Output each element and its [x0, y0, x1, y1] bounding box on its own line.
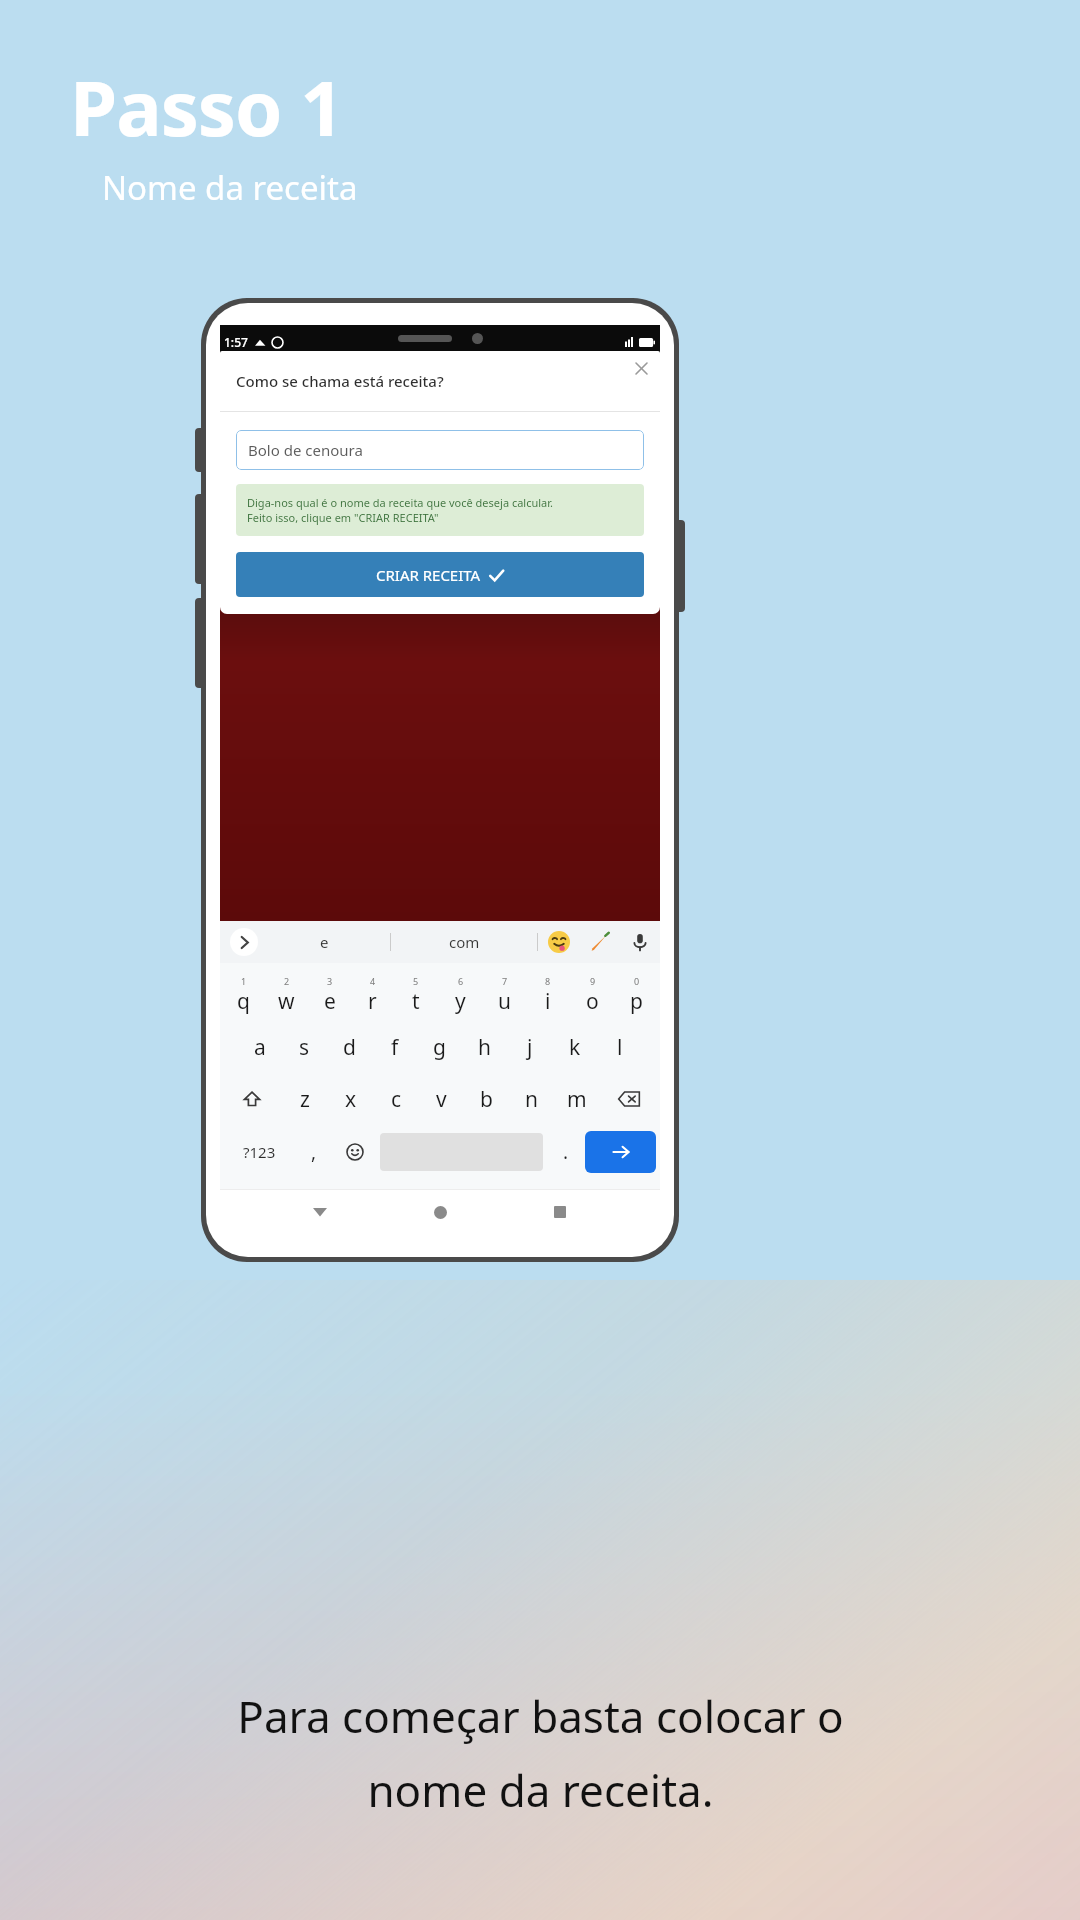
staticText: ,: [311, 1139, 317, 1165]
staticText: 0: [634, 975, 640, 987]
staticText: u: [498, 987, 511, 1016]
staticText: Bolo de cenoura: [248, 440, 363, 460]
staticText: t: [412, 987, 420, 1016]
button[interactable]: j: [507, 1021, 552, 1073]
button[interactable]: Apagar: [599, 1073, 658, 1125]
staticText: Feito isso, clique em "CRIAR RECEITA": [247, 510, 439, 525]
staticText: 1: [241, 975, 247, 987]
staticText: y: [455, 987, 466, 1016]
staticText: Diga-nos qual é o nome da receita que vo…: [247, 495, 554, 510]
button[interactable]: 8: [526, 969, 570, 1021]
staticText: l: [617, 1033, 623, 1062]
button[interactable]: f: [372, 1021, 417, 1073]
staticText: 2: [284, 975, 290, 987]
staticText: p: [630, 987, 643, 1016]
staticText: 1:57: [224, 334, 248, 350]
button[interactable]: 4: [351, 969, 394, 1021]
staticText: com: [449, 932, 480, 952]
button[interactable]: m: [554, 1073, 599, 1125]
staticText: f: [391, 1033, 399, 1062]
staticText: q: [237, 987, 250, 1016]
button[interactable]: Voz: [620, 921, 660, 963]
button[interactable]: c: [374, 1073, 419, 1125]
staticText: 3: [327, 975, 333, 987]
staticText: 7: [502, 975, 508, 987]
button[interactable]: Enter: [585, 1131, 656, 1173]
button[interactable]: x: [328, 1073, 374, 1125]
button[interactable]: z: [282, 1073, 328, 1125]
staticText: Nome da receita: [102, 165, 358, 210]
staticText: w: [278, 987, 295, 1016]
staticText: k: [569, 1033, 581, 1062]
staticText: ?123: [243, 1142, 276, 1162]
staticText: CRIAR RECEITA: [376, 565, 481, 585]
staticText: Para começar basta colocar o: [237, 1686, 844, 1746]
staticText: z: [300, 1085, 310, 1114]
button[interactable]: .: [547, 1125, 585, 1179]
button[interactable]: Início: [420, 1192, 460, 1232]
staticText: Como se chama está receita?: [236, 371, 444, 391]
staticText: r: [368, 987, 377, 1016]
staticText: 9: [590, 975, 596, 987]
staticText: n: [525, 1085, 538, 1114]
button[interactable]: s: [282, 1021, 327, 1073]
staticText: i: [545, 987, 551, 1016]
staticText: a: [254, 1033, 266, 1062]
staticText: 4: [370, 975, 376, 987]
button[interactable]: k: [552, 1021, 597, 1073]
staticText: x: [345, 1085, 357, 1114]
staticText: .: [563, 1139, 569, 1165]
button[interactable]: d: [327, 1021, 372, 1073]
button[interactable]: g: [417, 1021, 462, 1073]
button[interactable]: ,: [295, 1125, 333, 1179]
button[interactable]: 9: [570, 969, 614, 1021]
button[interactable]: Shift: [222, 1073, 282, 1125]
button[interactable]: CRIAR RECEITA: [236, 552, 644, 597]
button[interactable]: Bolo de cenoura: [236, 430, 644, 470]
staticText: h: [478, 1033, 491, 1062]
button[interactable]: Recentes: [540, 1192, 580, 1232]
button[interactable]: Voltar: [300, 1192, 340, 1232]
staticText: 8: [545, 975, 551, 987]
button[interactable]: n: [509, 1073, 554, 1125]
staticText: j: [527, 1033, 533, 1062]
staticText: m: [567, 1085, 587, 1114]
button[interactable]: ?123: [224, 1125, 295, 1179]
button[interactable]: Mais opções: [230, 928, 258, 956]
staticText: o: [586, 987, 599, 1016]
button[interactable]: 3: [308, 969, 351, 1021]
staticText: 5: [413, 975, 419, 987]
staticText: e: [320, 932, 329, 952]
button[interactable]: 7: [482, 969, 526, 1021]
button[interactable]: Fechar: [630, 357, 652, 379]
button[interactable]: h: [462, 1021, 507, 1073]
staticText: 6: [458, 975, 464, 987]
button[interactable]: 1: [222, 969, 265, 1021]
staticText: c: [391, 1085, 402, 1114]
staticText: s: [299, 1033, 310, 1062]
staticText: e: [324, 987, 336, 1016]
staticText: g: [433, 1033, 446, 1062]
staticText: Passo 1: [70, 55, 343, 159]
button[interactable]: 5: [394, 969, 438, 1021]
button[interactable]: v: [419, 1073, 464, 1125]
button[interactable]: 0: [614, 969, 658, 1021]
button[interactable]: 6: [438, 969, 482, 1021]
staticText: nome da receita.: [367, 1760, 714, 1820]
button[interactable]: a: [238, 1021, 282, 1073]
button[interactable]: Emoji: [333, 1125, 376, 1179]
staticText: b: [480, 1085, 493, 1114]
staticText: v: [436, 1085, 447, 1114]
staticText: d: [343, 1033, 356, 1062]
button[interactable]: 2: [265, 969, 308, 1021]
button[interactable]: b: [464, 1073, 509, 1125]
button[interactable]: l: [597, 1021, 642, 1073]
